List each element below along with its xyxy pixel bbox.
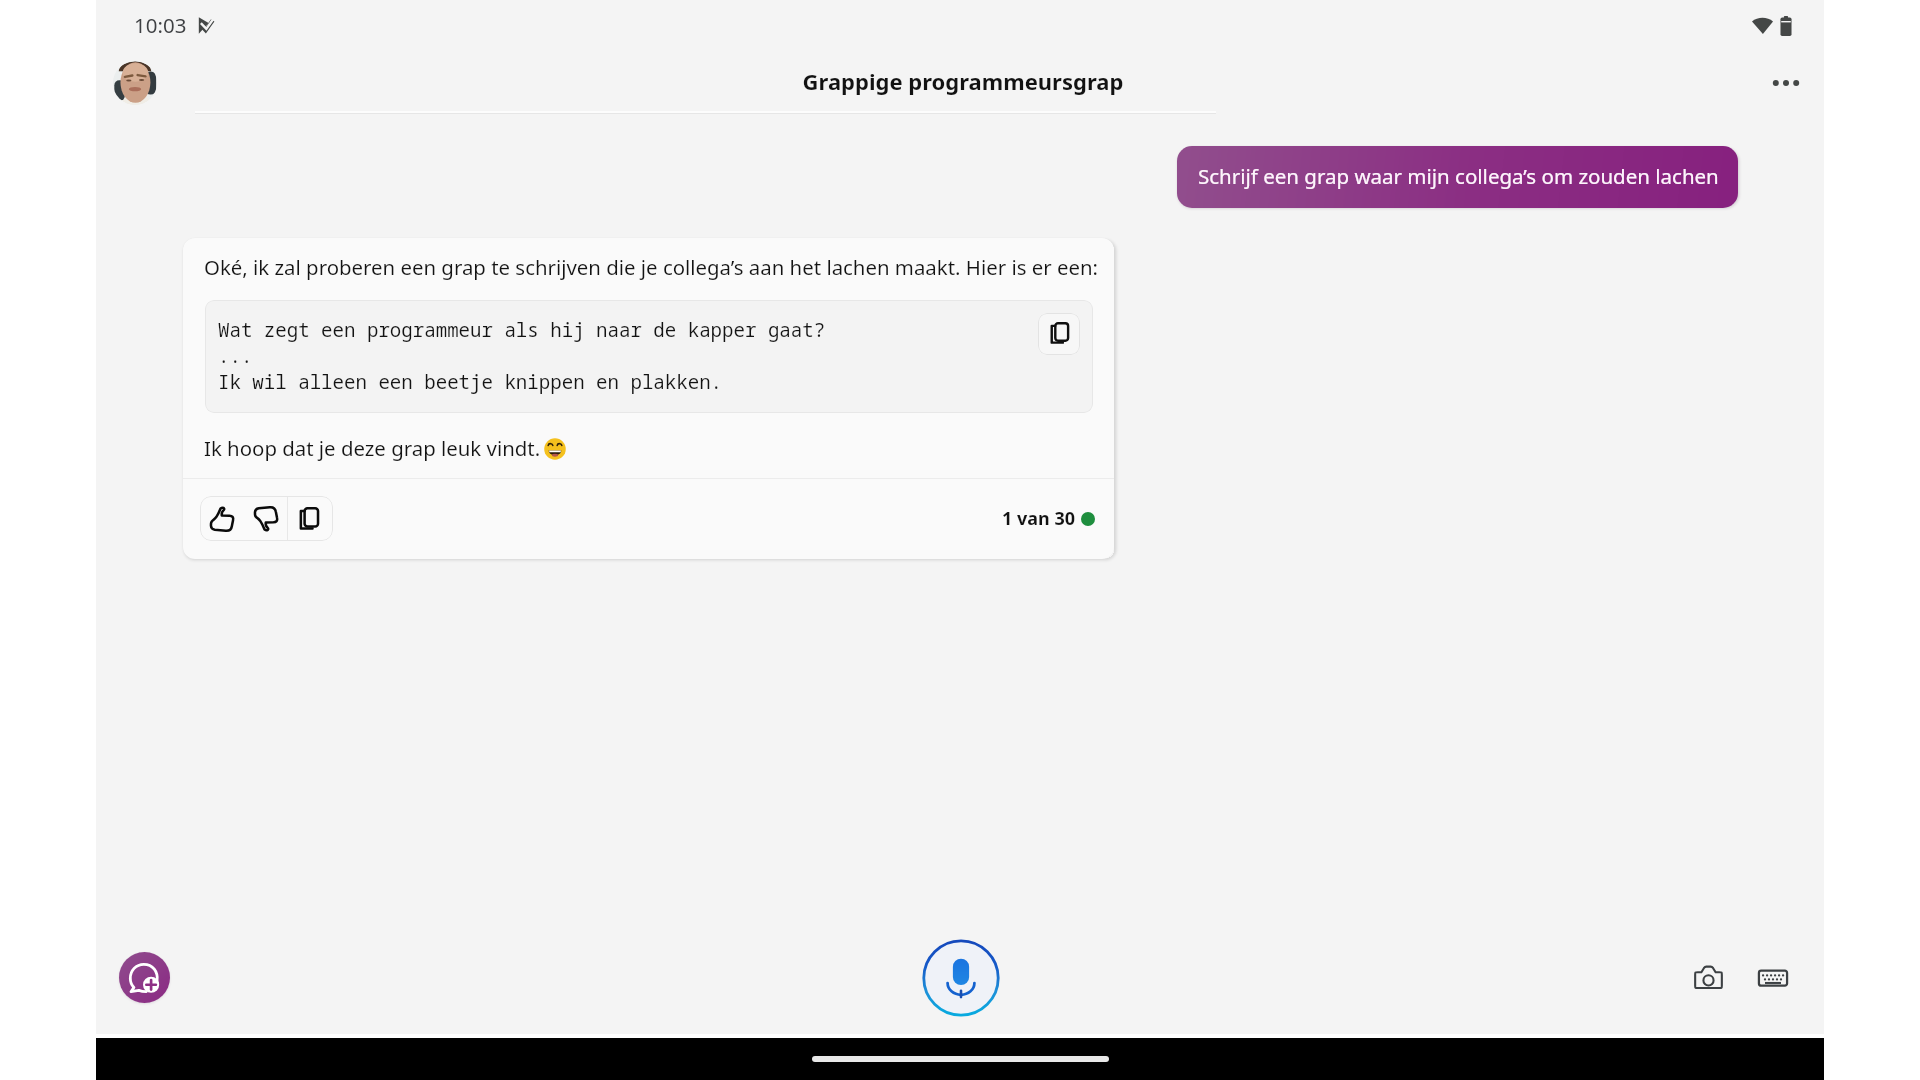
button[interactable]: Keyboard: [1745, 950, 1801, 1006]
staticText: Ik hoop dat je deze grap leuk vindt.: [204, 434, 541, 462]
button[interactable]: Copy code: [1038, 313, 1080, 355]
button[interactable]: Account: [113, 61, 157, 105]
button[interactable]: Copy response: [288, 496, 333, 541]
button[interactable]: More options: [1758, 55, 1814, 111]
staticText: 10:03: [134, 11, 187, 39]
button[interactable]: Schrijf een grap waar mijn collega’s om …: [1177, 146, 1738, 208]
staticText: ...: [218, 343, 253, 369]
staticText: 1 van 30: [1002, 506, 1076, 531]
button[interactable]: Voice input: [922, 939, 1000, 1017]
staticText: Grappige programmeursgrap: [99, 66, 1827, 96]
staticText: Oké, ik zal proberen een grap te schrijv…: [204, 253, 1099, 281]
staticText: Ik wil alleen een beetje knippen en plak…: [218, 369, 723, 395]
button[interactable]: Thumbs down: [244, 496, 287, 541]
button[interactable]: Camera: [1680, 950, 1736, 1006]
staticText: Schrijf een grap waar mijn collega’s om …: [1198, 162, 1719, 190]
button[interactable]: New chat: [119, 952, 170, 1003]
button[interactable]: Thumbs up: [200, 496, 244, 541]
staticText: Wat zegt een programmeur als hij naar de…: [218, 317, 826, 343]
